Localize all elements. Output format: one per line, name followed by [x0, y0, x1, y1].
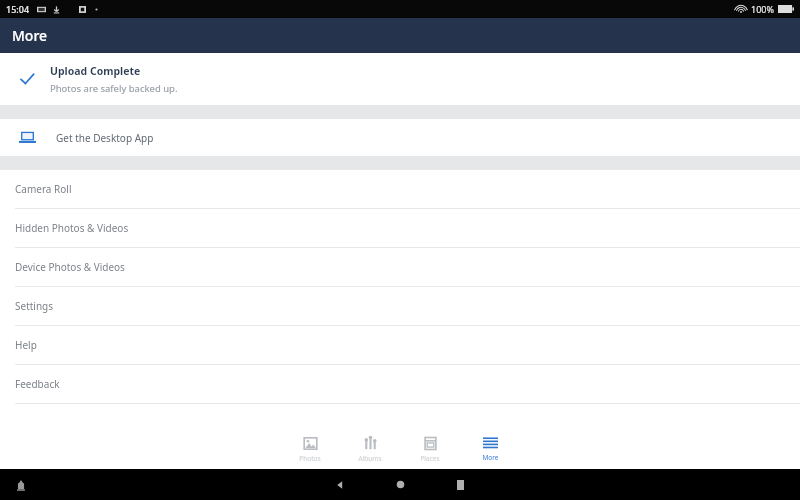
button[interactable]: Camera Roll: [0, 170, 800, 209]
staticText: Places: [420, 454, 440, 463]
button[interactable]: Home: [383, 469, 417, 500]
button[interactable]: Hidden Photos & Videos: [0, 209, 800, 248]
staticText: Upload Complete: [50, 64, 141, 78]
button[interactable]: More: [460, 429, 520, 469]
staticText: 100%: [751, 3, 774, 15]
other: Photos: [303, 436, 318, 451]
staticText: Photos: [299, 454, 321, 463]
button[interactable]: Device Photos & Videos: [0, 248, 800, 287]
staticText: Photos are safely backed up.: [50, 82, 178, 95]
button[interactable]: Recents: [443, 469, 477, 500]
staticText: Feedback: [15, 377, 60, 391]
staticText: Albums: [358, 454, 382, 463]
staticText: Camera Roll: [15, 182, 72, 196]
button[interactable]: Settings: [0, 287, 800, 326]
staticText: Help: [15, 338, 37, 352]
staticText: More: [12, 26, 48, 45]
button[interactable]: Back: [323, 469, 357, 500]
button[interactable]: Help: [0, 326, 800, 365]
staticText: Device Photos & Videos: [15, 260, 125, 274]
button[interactable]: Places: [400, 429, 460, 469]
button[interactable]: Upload: [14, 478, 28, 492]
button[interactable]: Feedback: [0, 365, 800, 404]
other: More: [482, 436, 499, 450]
staticText: Settings: [15, 299, 54, 313]
staticText: 15:04: [6, 3, 30, 15]
button[interactable]: Albums: [340, 429, 400, 469]
other: Albums: [363, 436, 378, 451]
staticText: Get the Desktop App: [56, 131, 154, 145]
staticText: Hidden Photos & Videos: [15, 221, 129, 235]
button[interactable]: Get the Desktop App: [0, 119, 800, 156]
other: Places: [423, 436, 438, 451]
button[interactable]: Photos: [280, 429, 340, 469]
staticText: More: [482, 453, 499, 462]
button[interactable]: Upload Complete: [0, 53, 800, 105]
